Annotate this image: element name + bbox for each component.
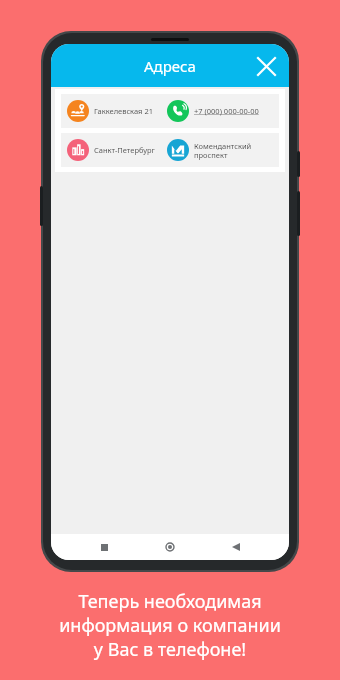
button[interactable]: Комендантский проспект	[167, 133, 279, 167]
staticText: Санкт-Петербург	[94, 145, 155, 155]
staticText: Комендантский проспект	[194, 141, 252, 160]
staticText: Адреса	[144, 56, 196, 76]
button[interactable]: Home	[157, 534, 183, 560]
button[interactable]: Гаккелевская 21	[61, 94, 167, 128]
button[interactable]: Back	[223, 534, 249, 560]
button[interactable]: Close	[251, 51, 281, 81]
staticText: Гаккелевская 21	[94, 106, 153, 116]
staticText: Теперь необходимая информация о компании…	[0, 589, 340, 661]
button[interactable]: +7 (000) 000-00-00	[167, 94, 279, 128]
button[interactable]: Recents	[91, 534, 117, 560]
button[interactable]: Санкт-Петербург	[61, 133, 167, 167]
staticText: +7 (000) 000-00-00	[194, 106, 259, 116]
